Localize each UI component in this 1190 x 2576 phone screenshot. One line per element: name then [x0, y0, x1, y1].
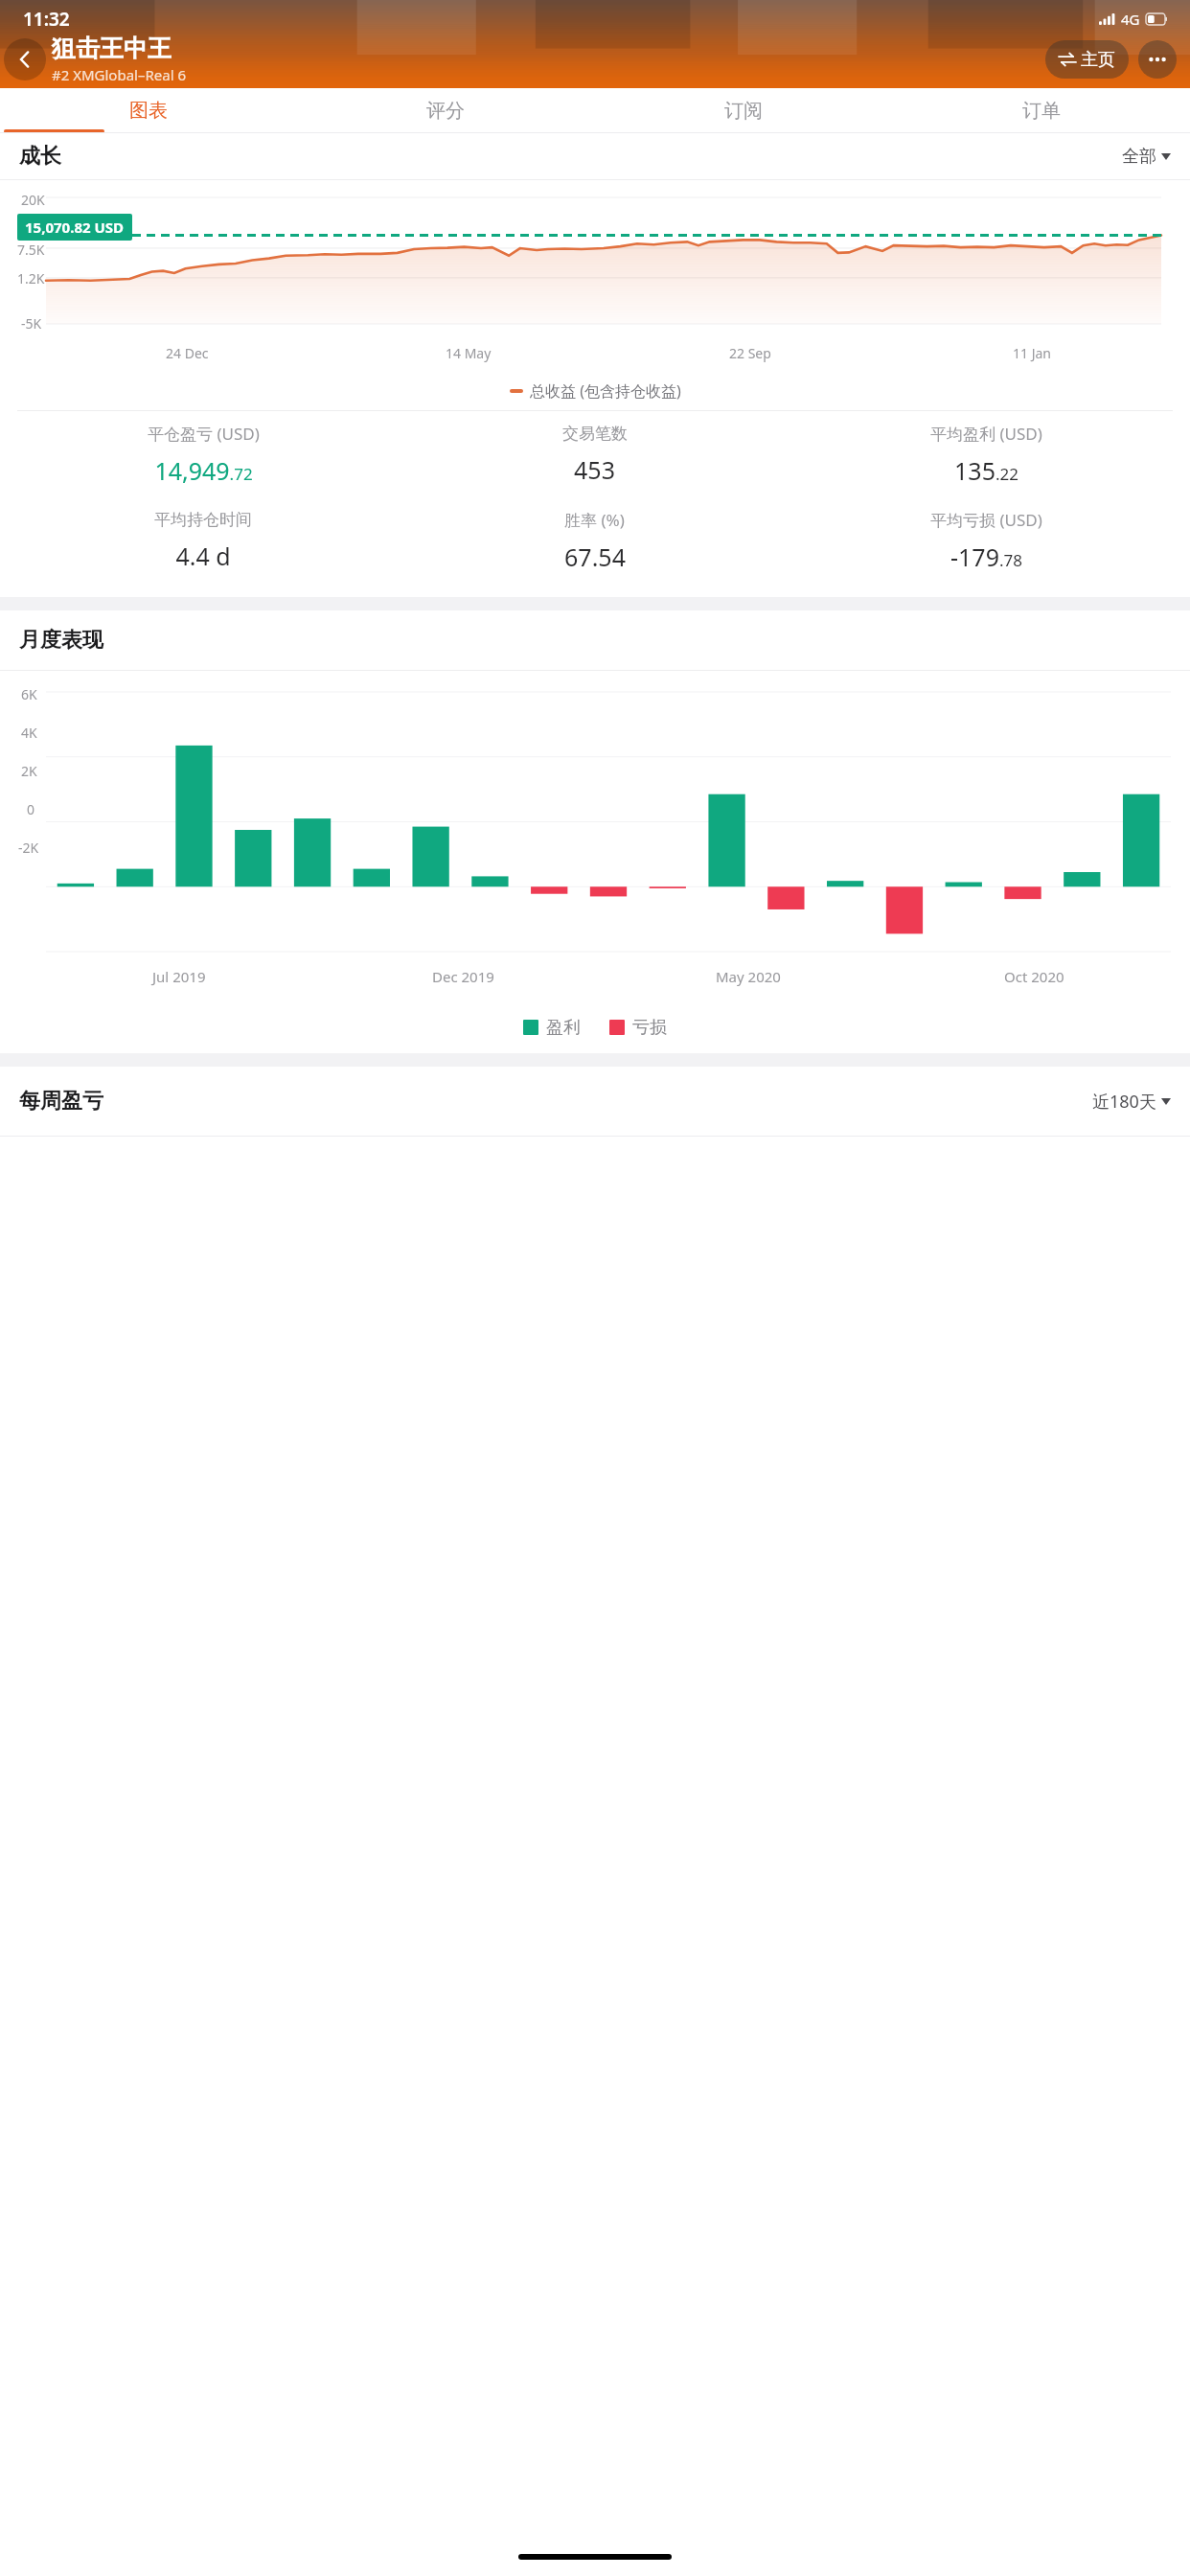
staticText: 1.2K	[17, 269, 45, 287]
staticText: 14 May	[446, 344, 492, 362]
staticText: 评分	[426, 99, 465, 123]
staticText: Jul 2019	[152, 967, 206, 986]
staticText: 7.5K	[17, 241, 45, 259]
staticText: 24 Dec	[166, 344, 209, 362]
button[interactable]: 图表	[0, 88, 297, 133]
staticText: 全部	[1122, 146, 1156, 168]
staticText: 4.4 d	[175, 540, 231, 572]
button[interactable]: 全部	[1122, 146, 1171, 168]
staticText: 135.22	[954, 454, 1018, 487]
staticText: 平仓盈亏 (USD)	[148, 423, 260, 445]
staticText: Oct 2020	[1004, 967, 1064, 986]
button[interactable]: 主页	[1045, 40, 1129, 79]
staticText: 453	[574, 453, 615, 486]
staticText: Dec 2019	[432, 967, 494, 986]
staticText: 月度表现	[19, 627, 103, 654]
staticText: 11:32	[23, 7, 70, 32]
staticText: 订单	[1022, 99, 1061, 123]
button[interactable]: 近180天	[1092, 1090, 1171, 1114]
staticText: 4K	[21, 724, 37, 742]
staticText: -179.78	[950, 540, 1022, 573]
staticText: 交易笔数	[562, 424, 628, 444]
button[interactable]: More options	[1138, 40, 1177, 79]
staticText: 14,949.72	[154, 454, 253, 487]
staticText: 胜率 (%)	[564, 509, 625, 531]
staticText: May 2020	[716, 967, 781, 986]
staticText: 每周盈亏	[19, 1088, 103, 1115]
staticText: 20K	[21, 191, 45, 209]
staticText: -5K	[21, 314, 42, 333]
staticText: 15,070.82 USD	[25, 218, 125, 237]
staticText: 6K	[21, 685, 37, 703]
staticText: #2 XMGlobal–Real 6	[52, 65, 186, 84]
button[interactable]: Back	[4, 38, 46, 80]
staticText: 盈利	[546, 1017, 581, 1039]
staticText: 亏损	[632, 1017, 667, 1039]
staticText: 22 Sep	[729, 344, 771, 362]
button[interactable]: 评分	[297, 88, 594, 133]
button[interactable]: 订阅	[594, 88, 892, 133]
staticText: 平均持仓时间	[154, 510, 252, 530]
staticText: 图表	[129, 99, 168, 123]
staticText: 成长	[19, 143, 61, 170]
staticText: -2K	[18, 839, 39, 857]
button[interactable]: 订单	[892, 88, 1190, 133]
staticText: 平均亏损 (USD)	[930, 509, 1042, 531]
staticText: 狙击王中王	[52, 34, 172, 63]
staticText: 2K	[21, 762, 37, 780]
staticText: 67.54	[564, 540, 626, 573]
staticText: 11 Jan	[1013, 344, 1051, 362]
staticText: 平均盈利 (USD)	[930, 423, 1042, 445]
staticText: 0	[27, 800, 35, 818]
staticText: 订阅	[724, 99, 763, 123]
staticText: 总收益 (包含持仓收益)	[530, 380, 681, 402]
staticText: 近180天	[1092, 1090, 1156, 1114]
staticText: 主页	[1081, 49, 1115, 71]
staticText: 4G	[1121, 10, 1140, 29]
